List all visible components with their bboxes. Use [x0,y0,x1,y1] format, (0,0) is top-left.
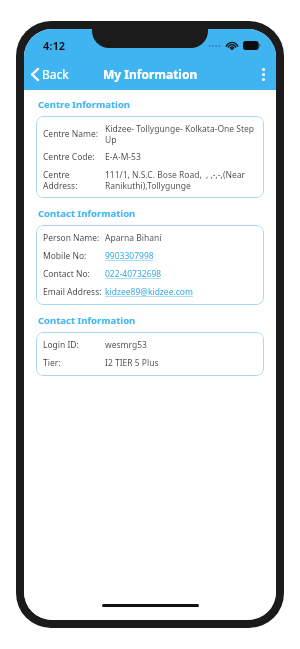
staticText: Contact Information [38,207,136,220]
staticText: I2 TIER 5 Plus [105,357,257,369]
button[interactable]: Person Name: [43,229,257,247]
staticText: wesmrg53 [105,339,257,351]
staticText: Kidzee- Tollygunge- Kolkata-One Step Up [105,123,257,145]
button[interactable]: Centre Address: [43,166,257,194]
staticText: Centre Code: [43,151,95,163]
staticText: 4:12 [43,38,65,53]
button[interactable]: Centre Code: [43,148,257,166]
staticText: Email Address: [43,286,102,298]
staticText: Centre Name: [43,128,99,140]
staticText: Mobile No: [43,250,87,262]
button[interactable]: Tier: [43,354,257,372]
button[interactable]: Back [24,61,79,87]
staticText: Back [42,66,69,82]
staticText: Tier: [43,357,61,369]
staticText: 022-40732698 [105,268,257,280]
button[interactable]: More options [251,61,276,88]
staticText: E-A-M-53 [105,151,257,163]
staticText: Login ID: [43,339,79,351]
staticText: Contact Information [38,314,136,327]
button[interactable]: Login ID: [43,336,257,354]
button[interactable]: Centre Name: [43,120,257,148]
button[interactable]: Email Address: [43,283,257,301]
staticText: kidzee89@kidzee.com [105,286,257,298]
button[interactable]: Contact No: [43,265,257,283]
staticText: Aparna Bihani [105,232,257,244]
staticText: My Information [103,66,198,82]
staticText: 111/1, N.S.C. Bose Road, , ,-,-,(Near Ra… [105,169,257,191]
staticText: Centre Address: [43,169,105,191]
staticText: Centre Information [38,98,131,111]
staticText: Person Name: [43,232,100,244]
button[interactable]: Mobile No: [43,247,257,265]
staticText: 9903307998 [105,250,257,262]
staticText: Contact No: [43,268,90,280]
